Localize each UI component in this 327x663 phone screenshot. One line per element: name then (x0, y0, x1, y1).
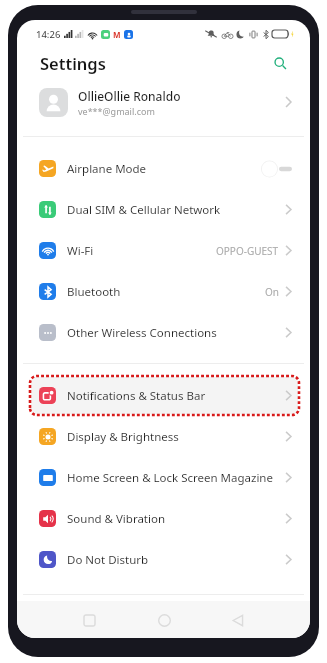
button[interactable]: Wi-Fi (17, 230, 310, 271)
staticText: On (265, 285, 279, 299)
staticText: OllieOllie Ronaldo (78, 88, 181, 104)
button[interactable]: Other Wireless Connections (17, 312, 310, 353)
staticText: Wi-Fi (67, 243, 94, 259)
staticText: M (113, 29, 121, 40)
button[interactable]: Airplane Mode (17, 148, 310, 189)
staticText: 14:26 (36, 28, 61, 41)
button[interactable]: Search (269, 52, 291, 74)
staticText: ve***@gmail.com (78, 105, 155, 117)
staticText: Settings (40, 52, 106, 74)
staticText: Notifications & Status Bar (67, 388, 206, 404)
staticText: Airplane Mode (67, 161, 147, 177)
button[interactable]: Home Screen & Lock Screen Magazine (17, 457, 310, 498)
button[interactable]: Do Not Disturb (17, 539, 310, 580)
staticText: OPPO-GUEST (216, 244, 279, 258)
button[interactable]: Display & Brightness (17, 416, 310, 457)
button[interactable]: Sound & Vibration (17, 498, 310, 539)
button[interactable]: Airplane Mode toggle (261, 160, 292, 178)
staticText: Home Screen & Lock Screen Magazine (67, 470, 273, 486)
button[interactable]: Recents (74, 605, 104, 635)
staticText: Dual SIM & Cellular Network (67, 202, 221, 218)
button[interactable]: Notifications & Status Bar (17, 375, 310, 416)
staticText: Do Not Disturb (67, 552, 149, 568)
button[interactable]: Bluetooth (17, 271, 310, 312)
button[interactable]: Dual SIM & Cellular Network (17, 189, 310, 230)
staticText: Other Wireless Connections (67, 325, 217, 341)
button[interactable]: Home (149, 605, 179, 635)
staticText: Sound & Vibration (67, 511, 166, 527)
button[interactable]: OllieOllie Ronaldo (17, 78, 310, 126)
staticText: Bluetooth (67, 284, 121, 300)
staticText: Display & Brightness (67, 429, 179, 445)
button[interactable]: Back (223, 605, 253, 635)
